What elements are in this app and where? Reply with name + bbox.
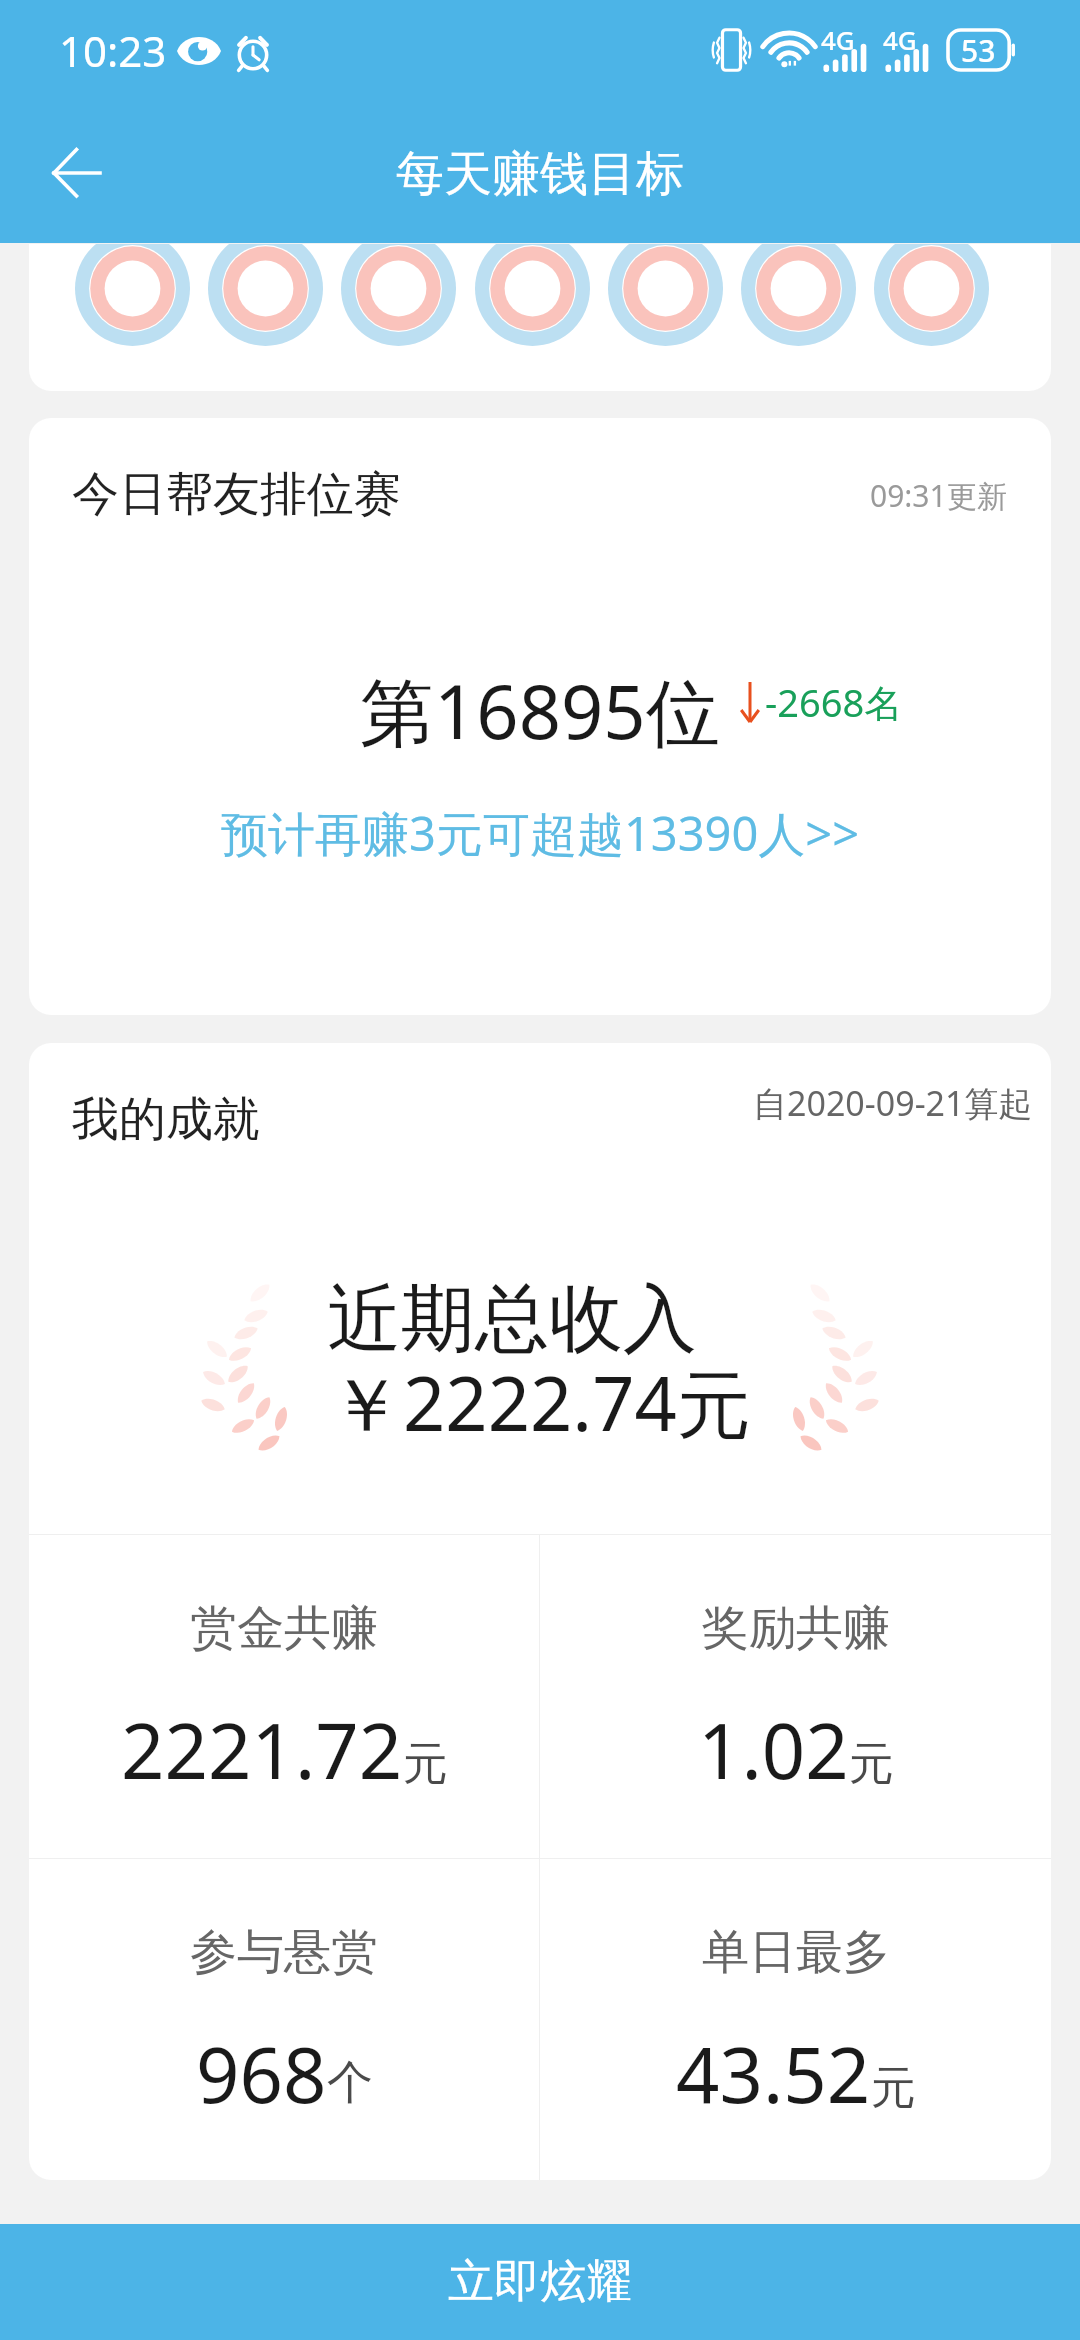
staticText: 1.02	[698, 1698, 849, 1802]
staticText: 10:23	[59, 22, 167, 79]
button[interactable]: 立即炫耀	[0, 2224, 1080, 2340]
button[interactable]: 预计再赚3元可超越13390人>>	[29, 786, 1051, 856]
staticText: 2221.72	[121, 1698, 403, 1802]
staticText: 今日帮友排位赛	[72, 465, 401, 524]
button[interactable]: Day 1 goal ring	[75, 244, 190, 346]
staticText: 个	[327, 2054, 373, 2112]
staticText: 968	[196, 2022, 327, 2126]
staticText: 预计再赚3元可超越13390人>>	[221, 801, 860, 865]
button[interactable]: Back	[26, 122, 126, 222]
button[interactable]: 奖励共赚	[540, 1535, 1051, 1858]
button[interactable]: Day 3 goal ring	[341, 244, 456, 346]
button[interactable]: Day 7 goal ring	[874, 244, 989, 346]
staticText: 元	[403, 1736, 448, 1793]
button[interactable]: Day 5 goal ring	[608, 244, 723, 346]
staticText: 参与悬赏	[190, 1923, 378, 1982]
button[interactable]: Day 2 goal ring	[208, 244, 323, 346]
staticText: 第16895位	[360, 660, 720, 761]
staticText: 元	[871, 2060, 916, 2117]
staticText: 我的成就	[72, 1090, 260, 1149]
button[interactable]: 单日最多	[540, 1859, 1051, 2180]
staticText: 元	[849, 1736, 894, 1793]
staticText: 09:31更新	[870, 475, 1007, 516]
button[interactable]: Day 6 goal ring	[741, 244, 856, 346]
staticText: 近期总收入	[327, 1273, 697, 1366]
staticText: 4G	[821, 22, 855, 57]
staticText: ￥2222.74元	[329, 1352, 751, 1453]
button[interactable]: Day 4 goal ring	[475, 244, 590, 346]
staticText: 赏金共赚	[190, 1599, 378, 1658]
staticText: 53	[961, 30, 996, 70]
staticText: 单日最多	[702, 1923, 890, 1982]
button[interactable]: 赏金共赚	[29, 1535, 539, 1858]
staticText: -2668名	[765, 676, 903, 728]
staticText: 奖励共赚	[702, 1599, 890, 1658]
staticText: 自2020-09-21算起	[753, 1080, 1033, 1126]
staticText: 立即炫耀	[448, 2253, 632, 2311]
button[interactable]: 参与悬赏	[29, 1859, 539, 2180]
staticText: 43.52	[676, 2022, 871, 2126]
staticText: 每天赚钱目标	[396, 144, 684, 204]
staticText: 4G	[883, 22, 917, 57]
